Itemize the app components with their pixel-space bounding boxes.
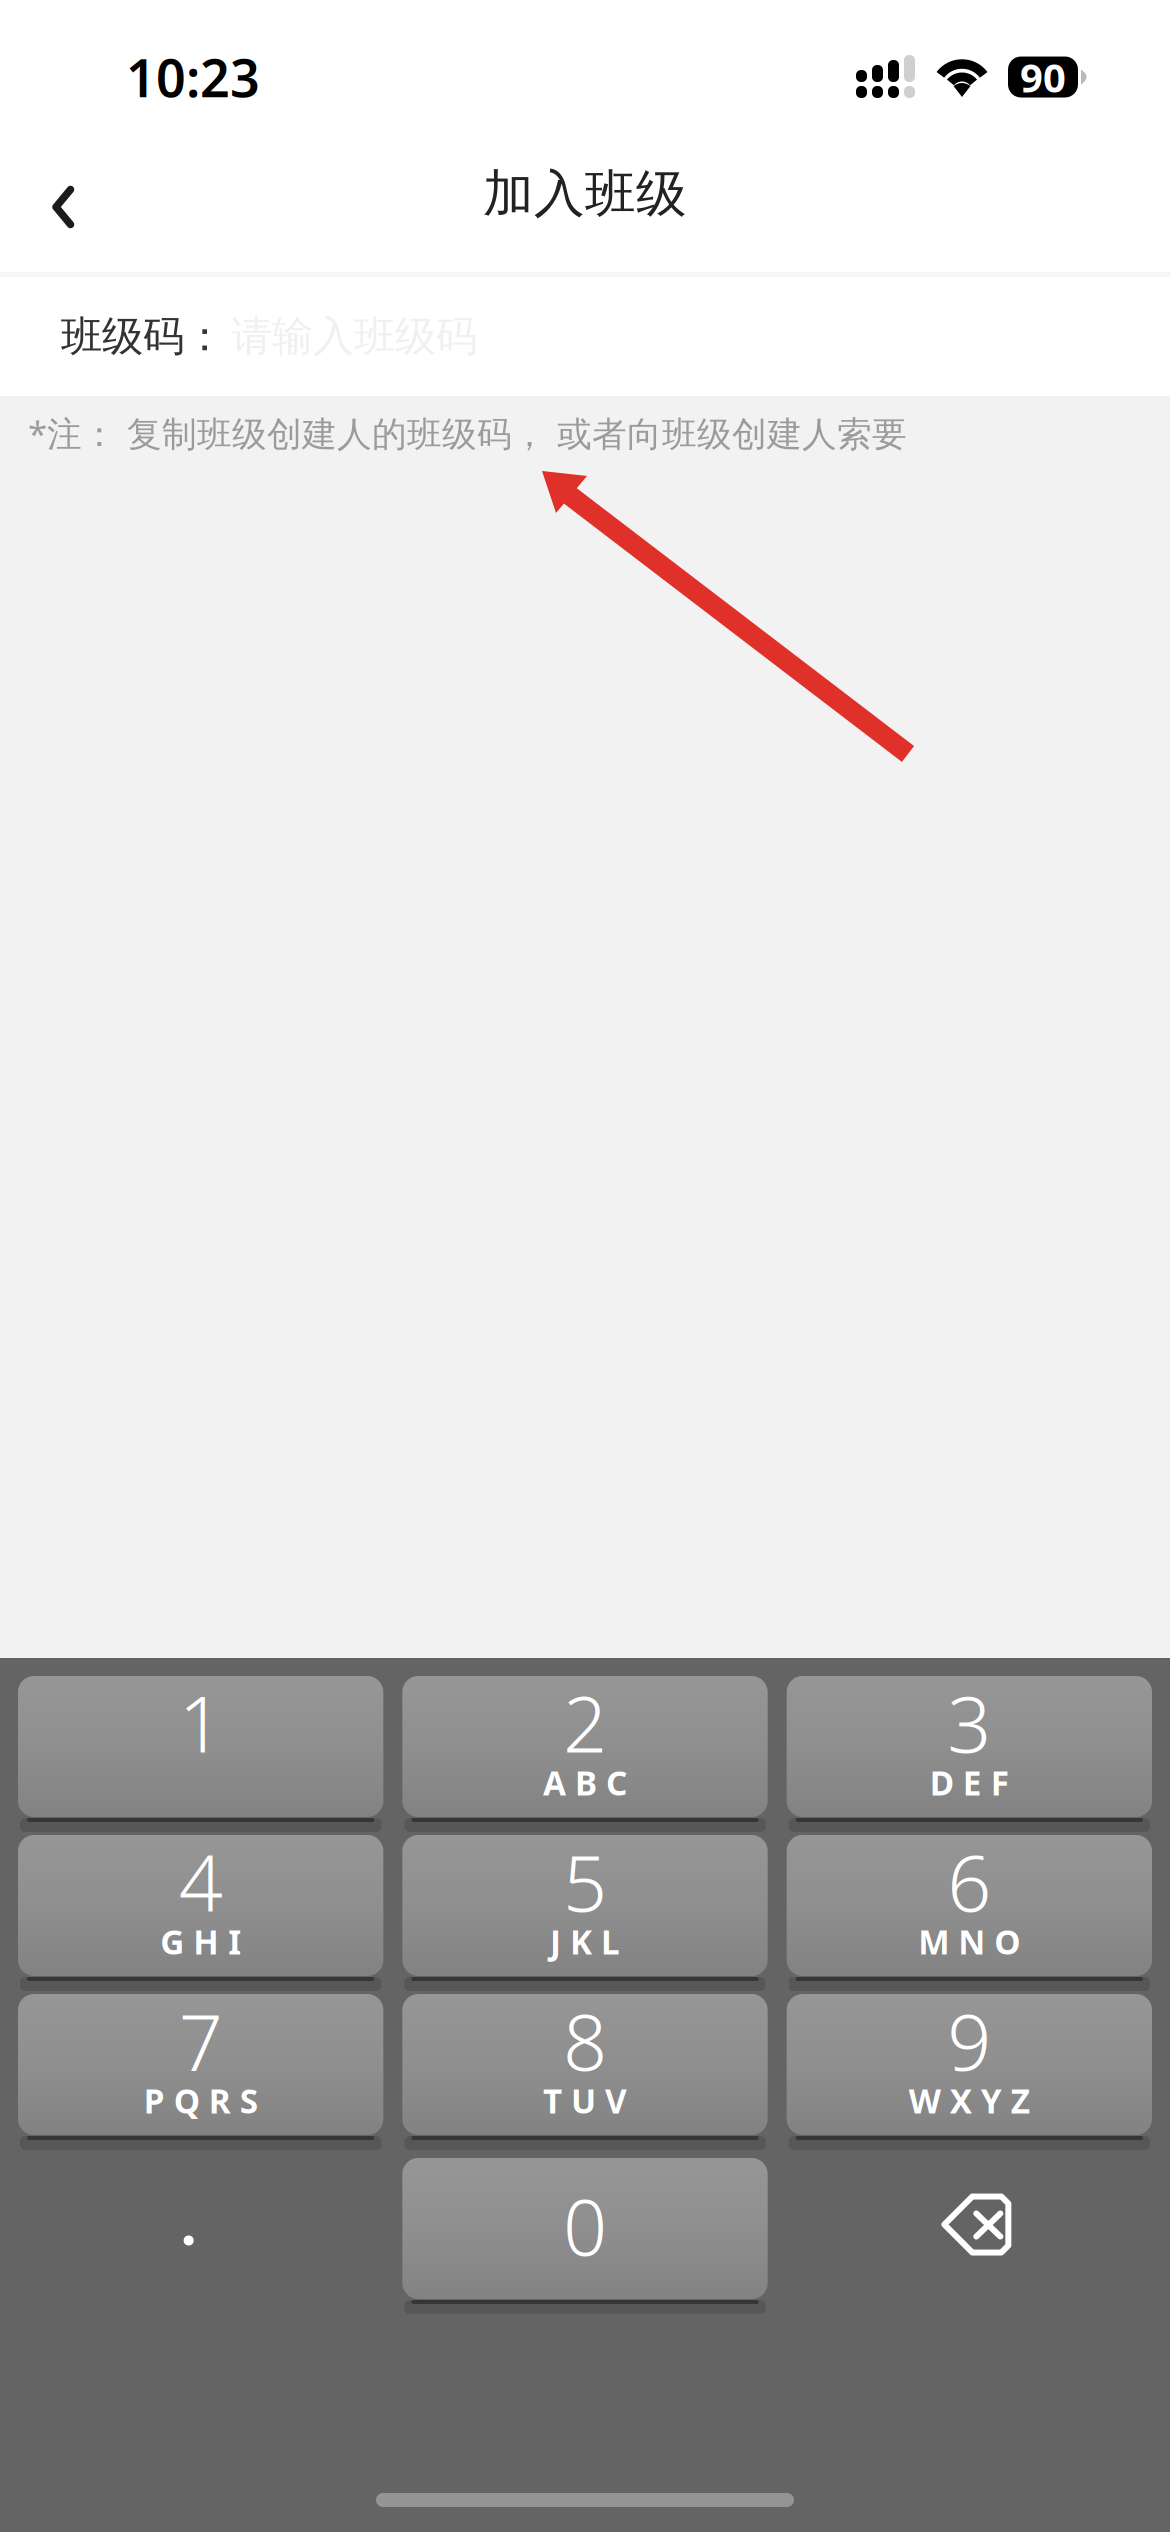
- staticText: 7: [179, 1989, 223, 2092]
- staticText: 9: [947, 1989, 991, 2092]
- staticText: *注： 复制班级创建人的班级码， 或者向班级创建人索要: [28, 410, 907, 456]
- staticText: 加入班级: [483, 163, 687, 225]
- staticText: 请输入班级码: [231, 311, 477, 362]
- staticText: 5: [563, 1830, 607, 1933]
- staticText: D E F: [930, 1760, 1009, 1805]
- button[interactable]: 返回: [0, 126, 127, 272]
- staticText: 90: [1020, 50, 1066, 103]
- staticText: M N O: [918, 1919, 1020, 1964]
- button[interactable]: 4: [18, 1835, 383, 1976]
- button[interactable]: 5: [402, 1835, 768, 1976]
- button[interactable]: 小数点: [18, 2158, 383, 2299]
- button[interactable]: 7: [18, 1994, 383, 2135]
- staticText: 4: [179, 1830, 223, 1933]
- staticText: 0: [563, 2174, 607, 2277]
- button[interactable]: 6: [787, 1835, 1152, 1976]
- staticText: 1: [179, 1671, 223, 1774]
- button[interactable]: 2: [402, 1676, 768, 1817]
- button[interactable]: 3: [787, 1676, 1152, 1817]
- staticText: W X Y Z: [909, 2078, 1030, 2123]
- staticText: 6: [947, 1830, 991, 1933]
- button[interactable]: 1: [18, 1676, 383, 1817]
- button[interactable]: 9: [787, 1994, 1152, 2135]
- button[interactable]: 0: [402, 2158, 768, 2299]
- staticText: J K L: [550, 1919, 620, 1964]
- staticText: 10:23: [126, 42, 260, 112]
- button[interactable]: 8: [402, 1994, 768, 2135]
- staticText: A B C: [543, 1760, 627, 1805]
- staticText: 3: [947, 1671, 991, 1774]
- button[interactable]: 删除: [787, 2158, 1152, 2299]
- staticText: G H I: [160, 1919, 241, 1964]
- staticText: 班级码：: [61, 311, 225, 362]
- staticText: 2: [563, 1671, 607, 1774]
- staticText: T U V: [543, 2078, 627, 2123]
- staticText: P Q R S: [144, 2078, 258, 2123]
- staticText: 8: [563, 1989, 607, 2092]
